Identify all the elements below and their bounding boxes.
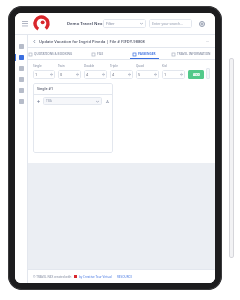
staticText: PASSENGER bbox=[138, 52, 156, 56]
staticText: ··· bbox=[206, 39, 210, 44]
button[interactable]: Nav item 2 bbox=[15, 52, 27, 63]
button[interactable]: by Creative Tour Virtual bbox=[79, 275, 112, 279]
button[interactable]: 1 bbox=[162, 70, 185, 79]
button[interactable]: ADD bbox=[188, 70, 204, 79]
button[interactable]: TRAVEL INFORMATION bbox=[168, 48, 215, 59]
staticText: Quad bbox=[136, 64, 144, 68]
button[interactable]: Nav item 6 bbox=[15, 96, 27, 107]
staticText: Triple bbox=[110, 64, 118, 68]
button[interactable]: 4 bbox=[84, 70, 107, 79]
button[interactable]: 0 bbox=[58, 70, 81, 79]
button[interactable]: Nav item 4 bbox=[15, 74, 27, 85]
staticText: Double bbox=[84, 64, 95, 68]
staticText: FILE bbox=[97, 52, 104, 56]
button[interactable]: Nav item 3 bbox=[15, 63, 27, 74]
staticText: 1 bbox=[35, 72, 38, 77]
button[interactable]: 4 bbox=[110, 70, 133, 79]
button[interactable]: QUOTATIONS & BOOKING bbox=[28, 48, 74, 59]
button[interactable]: Settings bbox=[197, 19, 206, 28]
staticText: QUOTATIONS & BOOKING bbox=[34, 52, 73, 56]
button[interactable]: More bbox=[206, 68, 210, 79]
button[interactable]: Passenger options bbox=[105, 99, 110, 104]
staticText: 4 bbox=[112, 72, 115, 77]
button[interactable]: Nav item 1 bbox=[15, 41, 27, 52]
staticText: © TRAVEL NEX created with bbox=[33, 275, 72, 279]
button[interactable]: 1 bbox=[33, 70, 55, 79]
staticText: Kid bbox=[162, 64, 167, 68]
button[interactable]: RESOURCE bbox=[117, 275, 133, 279]
staticText: Update Vacation for Ingrid Pineda | File… bbox=[39, 39, 145, 44]
button[interactable]: Reorder bbox=[36, 99, 41, 104]
staticText: 5 bbox=[138, 72, 141, 77]
staticText: TRAVEL INFORMATION bbox=[177, 52, 211, 56]
button[interactable]: Menu bbox=[20, 19, 30, 29]
button[interactable]: Enter your search... bbox=[149, 19, 192, 28]
staticText: 1 bbox=[164, 72, 167, 77]
staticText: Twin bbox=[58, 64, 65, 68]
staticText: 0 bbox=[60, 72, 63, 77]
button[interactable]: Home logo bbox=[34, 16, 49, 31]
staticText: Single #1 bbox=[37, 86, 53, 91]
staticText: Single bbox=[33, 64, 42, 68]
staticText: ADD bbox=[193, 73, 200, 77]
button[interactable]: FILE bbox=[74, 48, 121, 59]
button[interactable]: Filter bbox=[103, 19, 146, 28]
button[interactable]: PASSENGER bbox=[121, 48, 168, 59]
staticText: TBA bbox=[46, 99, 52, 103]
button[interactable]: Update Vacation for Ingrid Pineda | File… bbox=[33, 35, 210, 47]
button[interactable]: 5 bbox=[136, 70, 159, 79]
button[interactable]: Nav item 5 bbox=[15, 85, 27, 96]
staticText: Enter your search... bbox=[152, 21, 183, 26]
staticText: Filter bbox=[106, 21, 115, 26]
staticText: Demo Travel Nex bbox=[67, 21, 103, 27]
button[interactable]: TBA bbox=[43, 97, 102, 105]
staticText: 4 bbox=[86, 72, 89, 77]
